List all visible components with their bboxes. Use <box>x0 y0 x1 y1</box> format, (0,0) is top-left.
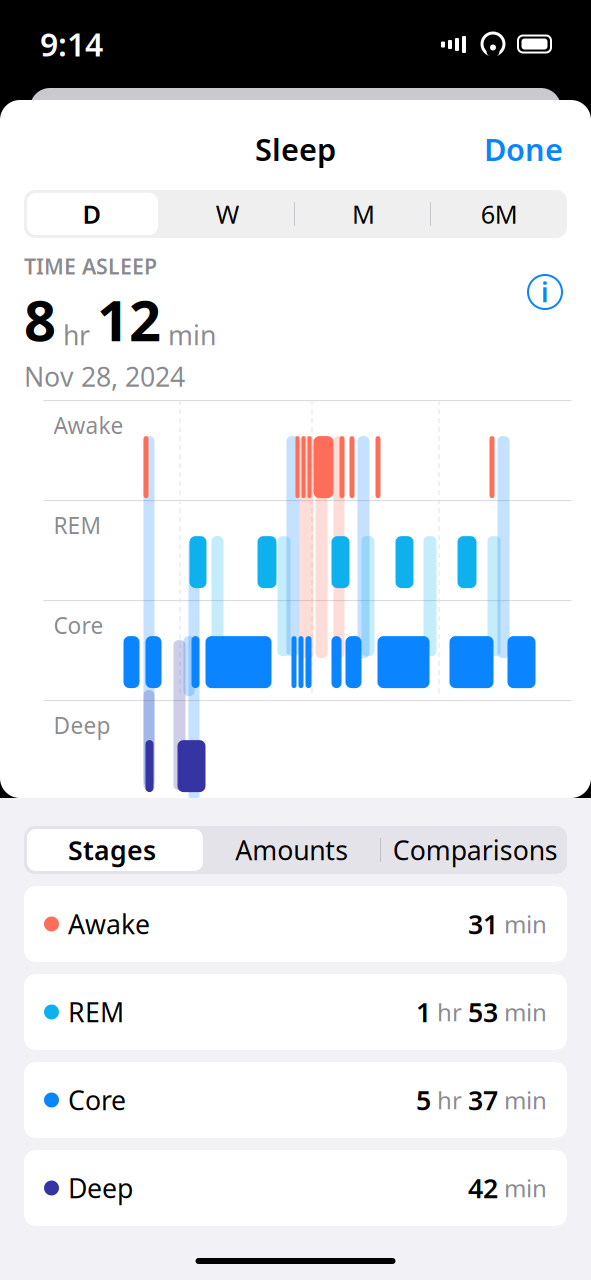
staticText: 10 PM <box>45 803 112 833</box>
staticText: 7 AM <box>440 803 494 833</box>
staticText: Deep <box>68 1170 133 1206</box>
button[interactable]: Done <box>480 123 567 175</box>
staticText: Core <box>68 1082 126 1118</box>
button[interactable]: REM <box>24 974 567 1050</box>
button[interactable]: Deep <box>24 1150 567 1226</box>
staticText: TIME ASLEEP <box>24 252 157 280</box>
button[interactable]: Awake <box>24 886 567 962</box>
staticText: Awake <box>68 906 150 942</box>
staticText: 37 <box>468 1082 498 1118</box>
staticText: Sleep <box>255 129 336 169</box>
staticText: Amounts <box>235 832 348 868</box>
staticText: 42 <box>468 1170 498 1206</box>
staticText: Core <box>53 610 103 640</box>
staticText: Deep <box>53 710 110 740</box>
staticText: 4 AM <box>313 803 367 833</box>
staticText: 6M <box>481 197 518 231</box>
button[interactable]: Stages <box>24 826 200 874</box>
button[interactable]: M <box>295 190 431 238</box>
button[interactable]: 6M <box>431 190 567 238</box>
staticText: REM <box>68 994 124 1030</box>
staticText: min <box>498 1084 547 1116</box>
staticText: 8 <box>24 282 56 357</box>
staticText: 53 <box>468 994 498 1030</box>
staticText: W <box>216 197 240 231</box>
staticText: hr <box>431 1084 468 1116</box>
staticText: hr <box>56 317 97 353</box>
staticText: hr <box>431 996 468 1028</box>
button[interactable]: Core <box>24 1062 567 1138</box>
staticText: 1 AM <box>181 803 235 833</box>
staticText: Stages <box>68 832 156 868</box>
staticText: 1 <box>416 994 431 1030</box>
button[interactable]: D <box>24 190 160 238</box>
button[interactable]: Amounts <box>200 826 383 874</box>
staticText: min <box>161 317 216 353</box>
staticText: min <box>498 1172 547 1204</box>
staticText: Awake <box>53 410 123 440</box>
staticText: Comparisons <box>393 832 558 868</box>
button[interactable]: W <box>160 190 296 238</box>
button[interactable]: Comparisons <box>383 826 567 874</box>
staticText: 12 <box>97 282 161 357</box>
staticText: min <box>498 996 547 1028</box>
staticText: 9:14 <box>40 23 103 65</box>
staticText: 5 <box>416 1082 431 1118</box>
staticText: D <box>82 197 101 231</box>
staticText: REM <box>53 510 101 540</box>
button[interactable]: About sleep stages <box>523 270 567 314</box>
staticText: Done <box>484 129 563 169</box>
staticText: 31 <box>468 906 498 942</box>
staticText: min <box>498 908 547 940</box>
staticText: M <box>352 197 375 231</box>
staticText: Nov 28, 2024 <box>24 359 185 394</box>
staticText: i <box>541 274 549 310</box>
